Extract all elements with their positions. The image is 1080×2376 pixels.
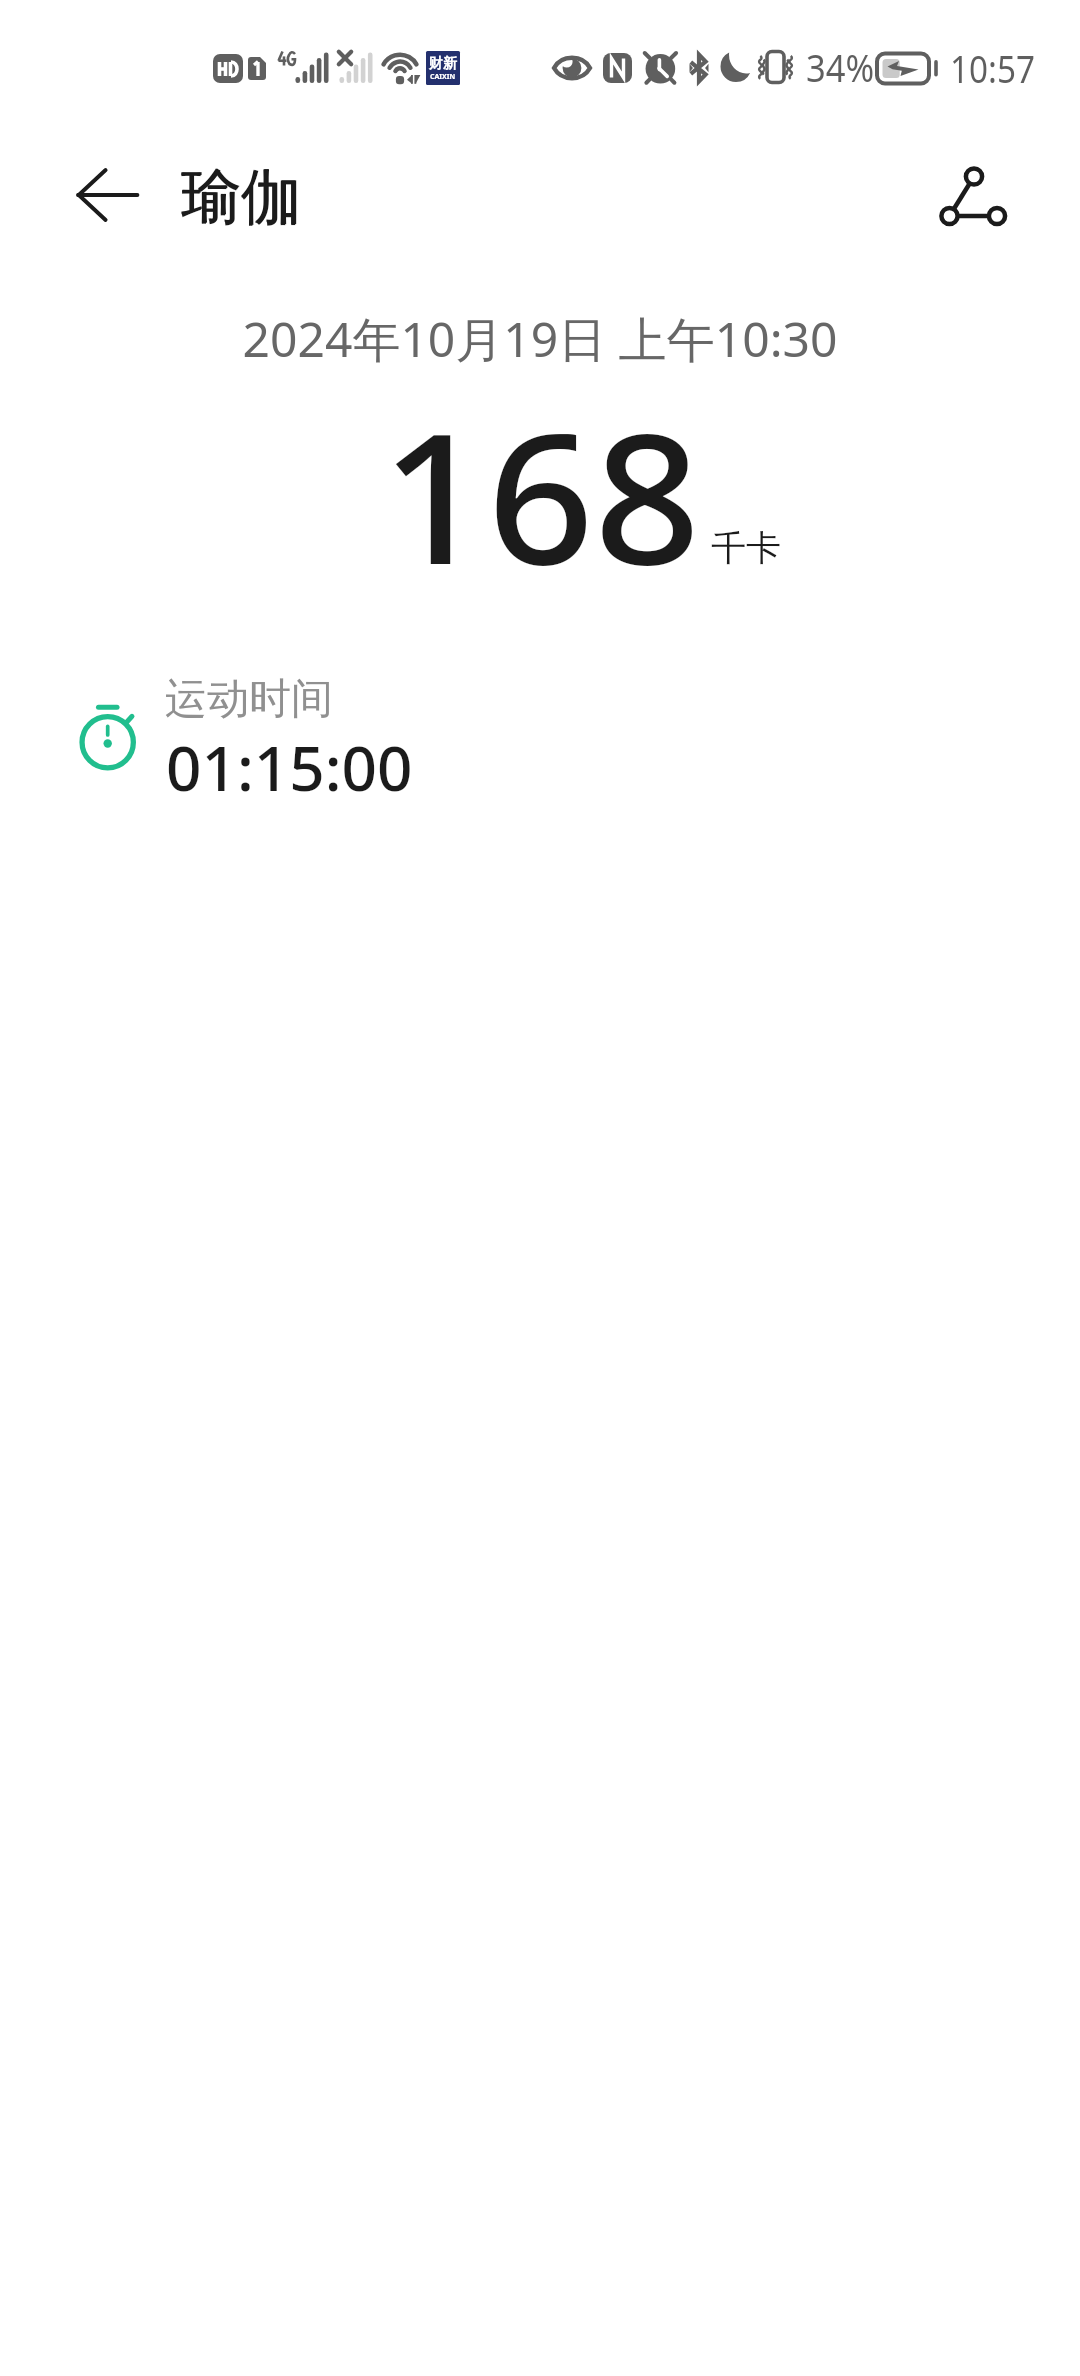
staticText: 运动时间	[165, 673, 333, 726]
staticText: 瑜伽	[181, 160, 301, 236]
staticText: 财新	[429, 55, 457, 73]
button[interactable]: Back	[48, 135, 168, 255]
staticText: CAIXIN	[430, 72, 456, 82]
button[interactable]: Share	[918, 141, 1028, 251]
staticText: 瑜伽	[182, 159, 302, 235]
staticText: 千卡	[711, 526, 781, 570]
staticText: 01:15:00	[166, 725, 413, 809]
staticText: 10:57	[950, 42, 1036, 94]
staticText: 168	[381, 372, 700, 617]
staticText: 34%	[806, 40, 875, 93]
staticText: 2024年10月19日 上午10:30	[0, 306, 1080, 372]
staticText: 瑜伽	[181, 159, 301, 235]
